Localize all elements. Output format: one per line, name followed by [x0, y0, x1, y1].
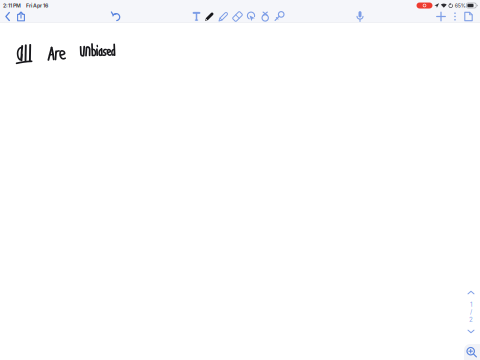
staticText: /	[470, 308, 472, 316]
button[interactable]: Marker	[273, 11, 285, 22]
button[interactable]: Zoom in	[464, 344, 480, 360]
button[interactable]: Pen	[203, 11, 215, 22]
button[interactable]: Next page	[466, 329, 476, 334]
button[interactable]: Add	[435, 11, 447, 22]
staticText: 2	[469, 316, 473, 323]
staticText: 2:11 PM	[3, 2, 21, 9]
button[interactable]: Pencil	[217, 11, 229, 22]
button[interactable]: Pages	[463, 11, 474, 22]
button[interactable]: More options	[452, 11, 458, 22]
button[interactable]: Previous page	[466, 290, 476, 295]
staticText: 65%	[455, 2, 466, 9]
button[interactable]: Lasso	[245, 11, 257, 22]
button[interactable]: Ruler	[259, 11, 271, 22]
button[interactable]: Back	[4, 11, 12, 22]
staticText: 1	[470, 301, 472, 308]
button[interactable]: Dictate	[355, 11, 365, 22]
button[interactable]: Text tool	[191, 11, 201, 22]
button[interactable]: Undo	[110, 11, 122, 22]
button[interactable]: Share	[16, 11, 26, 22]
button[interactable]: Eraser	[231, 11, 243, 22]
staticText: Fri Apr 16	[26, 2, 48, 9]
